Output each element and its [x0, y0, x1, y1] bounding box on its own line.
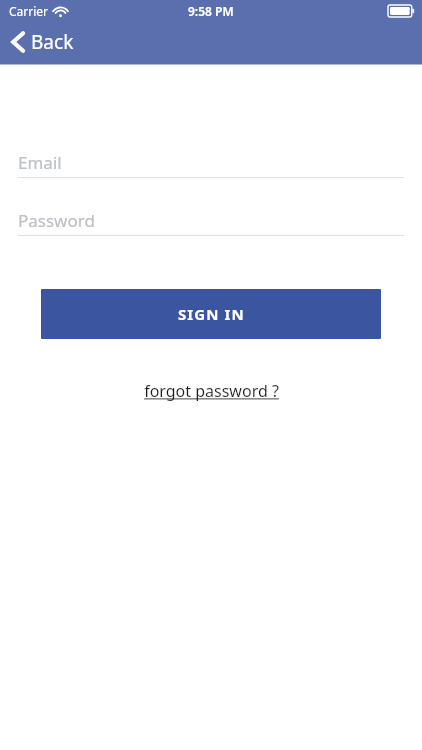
- staticText: SIGN IN: [178, 304, 245, 324]
- staticText: Carrier: [9, 3, 49, 19]
- other: Back: [11, 31, 25, 53]
- staticText: 9:58 PM: [188, 3, 234, 19]
- staticText: Email: [18, 151, 62, 174]
- button[interactable]: SIGN IN: [41, 289, 381, 339]
- button[interactable]: Back: [8, 27, 77, 57]
- button[interactable]: Email: [18, 148, 404, 178]
- staticText: Password: [18, 209, 95, 232]
- other: Wi-Fi: [54, 6, 67, 17]
- button[interactable]: Password: [18, 206, 404, 236]
- other: Battery full: [388, 5, 415, 17]
- button[interactable]: forgot password ?: [138, 378, 285, 404]
- staticText: Back: [31, 29, 74, 55]
- staticText: forgot password ?: [144, 380, 279, 402]
